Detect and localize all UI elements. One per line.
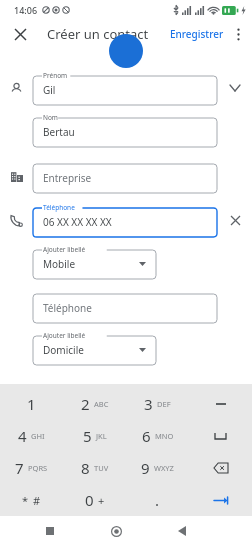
button[interactable]: 6	[126, 420, 189, 452]
staticText: 5	[83, 426, 92, 446]
button[interactable]: 2	[63, 388, 126, 420]
staticText: Ajouter libellé	[43, 331, 86, 340]
button[interactable]: Effacer	[224, 209, 246, 231]
button[interactable]: Ajouter une photo	[109, 34, 143, 68]
button[interactable]: .	[126, 484, 189, 516]
button[interactable]: Fermer	[8, 22, 32, 46]
staticText: Ajouter libellé	[43, 245, 86, 254]
button[interactable]: Espace	[189, 420, 252, 452]
staticText: 8	[81, 458, 90, 478]
button[interactable]: Prénom	[33, 71, 217, 105]
staticText: 7	[15, 458, 24, 478]
button[interactable]: 9	[126, 452, 189, 484]
staticText: Nom	[43, 113, 58, 122]
staticText: TUV	[94, 463, 109, 473]
staticText: WXYZ	[154, 463, 174, 473]
staticText: Téléphone	[43, 203, 75, 212]
staticText: Domicile	[43, 343, 84, 357]
staticText: Créer un contact	[47, 25, 149, 43]
button[interactable]: Plus d'options	[228, 24, 248, 44]
button[interactable]: Suivant	[189, 484, 252, 516]
button[interactable]: Téléphone	[33, 203, 217, 237]
button[interactable]: *	[0, 484, 63, 516]
staticText: Enregistrer	[170, 27, 224, 41]
staticText: Gil	[43, 83, 56, 97]
staticText: *	[22, 493, 29, 508]
staticText: ABC	[94, 399, 109, 409]
staticText: 6	[142, 426, 151, 446]
staticText: Bertau	[43, 125, 75, 139]
button[interactable]: 4	[0, 420, 63, 452]
staticText: 14:06	[14, 4, 38, 16]
staticText: 1	[27, 394, 36, 414]
staticText: 2	[81, 394, 90, 414]
button[interactable]: 3	[126, 388, 189, 420]
button[interactable]: Applications récentes	[35, 516, 65, 546]
staticText: #	[33, 493, 41, 508]
staticText: +	[98, 493, 105, 508]
button[interactable]: 1	[0, 388, 63, 420]
staticText: 06 XX XX XX XX	[43, 215, 112, 229]
staticText: DEF	[157, 399, 171, 409]
staticText: PQRS	[28, 463, 48, 473]
button[interactable]: Enregistrer	[168, 23, 226, 45]
staticText: 3	[144, 394, 153, 414]
button[interactable]: Retour arrière	[189, 452, 252, 484]
staticText: Téléphone	[43, 301, 92, 315]
staticText: 0	[85, 490, 94, 510]
button[interactable]: Accueil	[101, 516, 131, 546]
staticText: JKL	[96, 431, 107, 441]
button[interactable]: 7	[0, 452, 63, 484]
staticText: 9	[141, 458, 150, 478]
button[interactable]: 0	[63, 484, 126, 516]
button[interactable]: Ajouter libellé	[33, 245, 156, 279]
button[interactable]: Retour	[167, 516, 197, 546]
button[interactable]: Développer	[224, 77, 246, 99]
staticText: 4	[18, 426, 27, 446]
button[interactable]: 5	[63, 420, 126, 452]
button[interactable]: Téléphone	[33, 289, 217, 323]
staticText: Mobile	[43, 257, 76, 271]
staticText: Entreprise	[43, 171, 92, 185]
button[interactable]: Nom	[33, 113, 217, 147]
staticText: GHI	[31, 431, 45, 441]
button[interactable]: Entreprise	[33, 159, 217, 193]
button[interactable]: Ajouter libellé	[33, 331, 156, 365]
staticText: Prénom	[43, 71, 68, 80]
staticText: .	[155, 490, 160, 510]
staticText: MNO	[155, 431, 174, 441]
button[interactable]: 8	[63, 452, 126, 484]
button[interactable]: Tiret	[189, 388, 252, 420]
